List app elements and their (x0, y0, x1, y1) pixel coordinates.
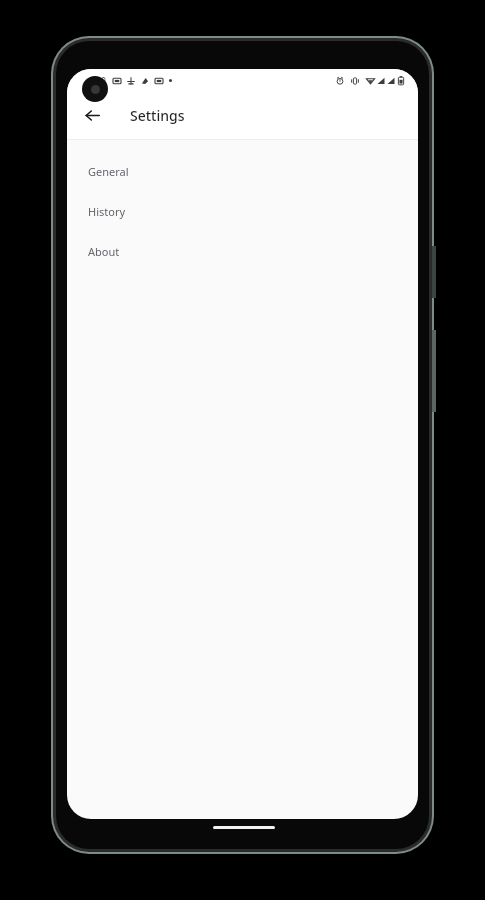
staticText: 2:19 (90, 75, 106, 86)
button[interactable]: About (67, 231, 418, 271)
staticText: Settings (130, 106, 185, 125)
staticText: General (88, 164, 129, 179)
button[interactable]: Back (78, 101, 106, 129)
staticText: History (88, 204, 126, 219)
button[interactable]: General (67, 151, 418, 191)
button[interactable]: History (67, 191, 418, 231)
staticText: About (88, 244, 120, 259)
